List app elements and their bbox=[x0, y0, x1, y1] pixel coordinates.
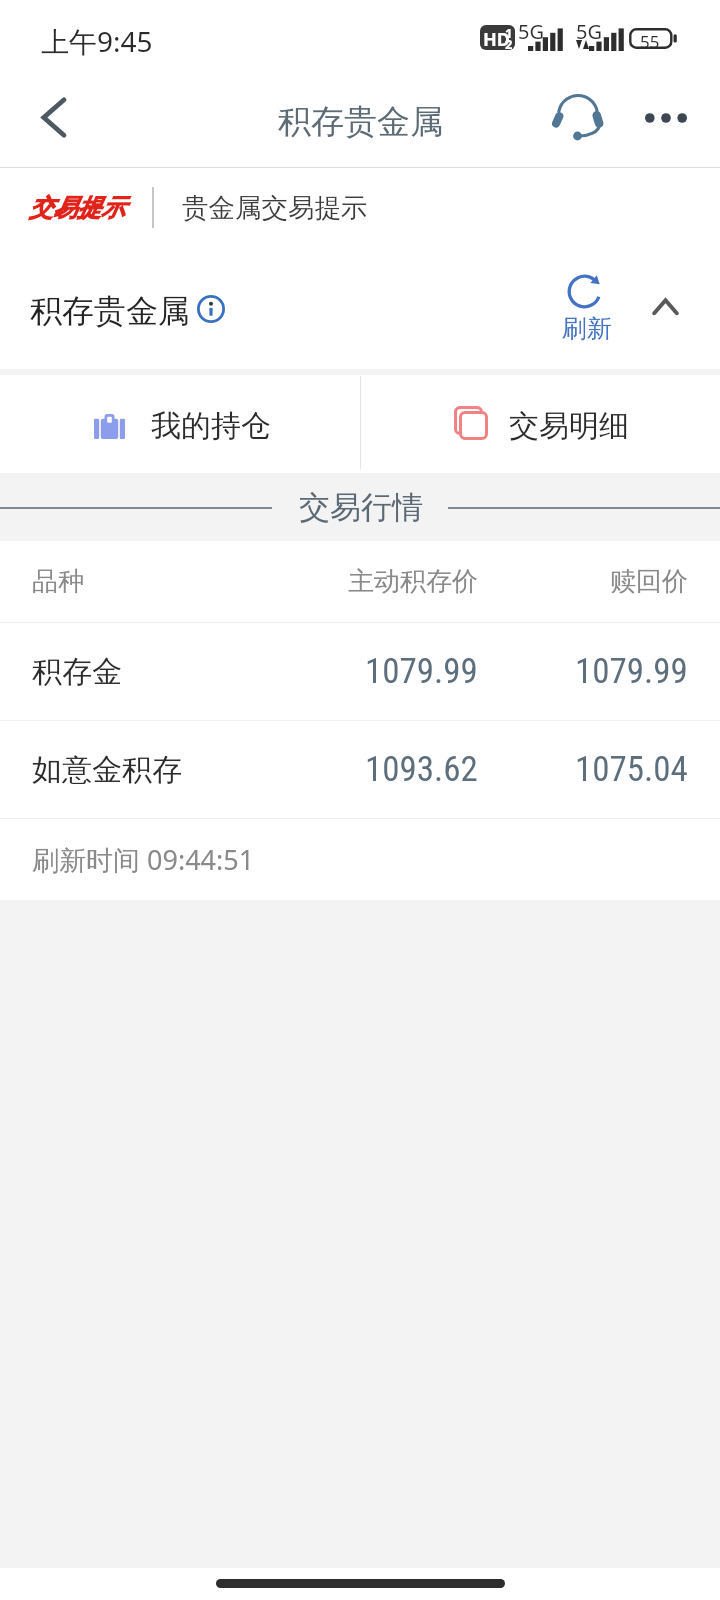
button[interactable]: 更多 bbox=[626, 76, 716, 167]
staticText: 交易行情 bbox=[299, 488, 423, 527]
button[interactable]: 我的持仓 bbox=[0, 375, 360, 473]
staticText: 我的持仓 bbox=[151, 407, 271, 445]
staticText: 积存金 bbox=[32, 653, 122, 691]
staticText: 品种 bbox=[32, 565, 84, 598]
staticText: 贵金属交易提示 bbox=[182, 191, 368, 224]
staticText: 赎回价 bbox=[610, 565, 688, 598]
staticText: 5G bbox=[576, 18, 602, 45]
button[interactable]: 交易明细 bbox=[361, 375, 720, 473]
button[interactable]: 收起 bbox=[620, 256, 715, 351]
staticText: 刷新时间 09:44:51 bbox=[32, 841, 255, 878]
button[interactable]: 刷新 bbox=[545, 260, 625, 356]
staticText: 2 bbox=[505, 35, 513, 50]
staticText: 主动积存价 bbox=[348, 565, 478, 598]
button[interactable]: 说明 bbox=[197, 295, 225, 323]
staticText: 5G bbox=[518, 18, 544, 45]
staticText: 如意金积存 bbox=[32, 751, 182, 789]
staticText: 1075.04 bbox=[575, 749, 688, 790]
button[interactable]: 积存金 bbox=[0, 623, 720, 720]
staticText: 交易明细 bbox=[509, 407, 629, 445]
staticText: 刷新 bbox=[562, 313, 612, 344]
staticText: 1093.62 bbox=[365, 749, 478, 790]
button[interactable]: 交易提示 bbox=[0, 168, 720, 246]
staticText: 积存贵金属 bbox=[30, 291, 190, 331]
button[interactable]: 如意金积存 bbox=[0, 721, 720, 818]
staticText: 1079.99 bbox=[365, 651, 478, 692]
staticText: 1 bbox=[505, 25, 513, 42]
button[interactable]: 返回 bbox=[0, 76, 100, 167]
staticText: 上午9:45 bbox=[41, 22, 153, 60]
staticText: 1079.99 bbox=[575, 651, 688, 692]
staticText: HD bbox=[483, 27, 510, 50]
staticText: 交易提示 bbox=[29, 193, 125, 223]
button[interactable]: 客服 bbox=[541, 76, 615, 167]
staticText: 55 bbox=[640, 30, 660, 53]
staticText: 积存贵金属 bbox=[278, 101, 443, 143]
